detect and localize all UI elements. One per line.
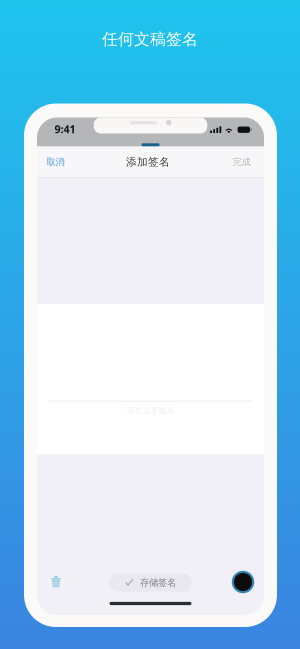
- staticText: 取消: [46, 156, 64, 168]
- staticText: 请在这里签名: [126, 406, 174, 415]
- button[interactable]: 取消: [36, 146, 75, 178]
- staticText: 添加签名: [126, 155, 170, 168]
- button[interactable]: 删除签名: [45, 570, 67, 593]
- staticText: 完成: [232, 156, 250, 168]
- button[interactable]: 存储签名: [109, 574, 192, 592]
- button[interactable]: 选择颜色: [232, 571, 254, 593]
- staticText: 存储签名: [140, 577, 176, 588]
- staticText: 9:41: [54, 122, 75, 136]
- button[interactable]: 完成: [222, 146, 261, 178]
- staticText: 任何文稿签名: [102, 29, 198, 49]
